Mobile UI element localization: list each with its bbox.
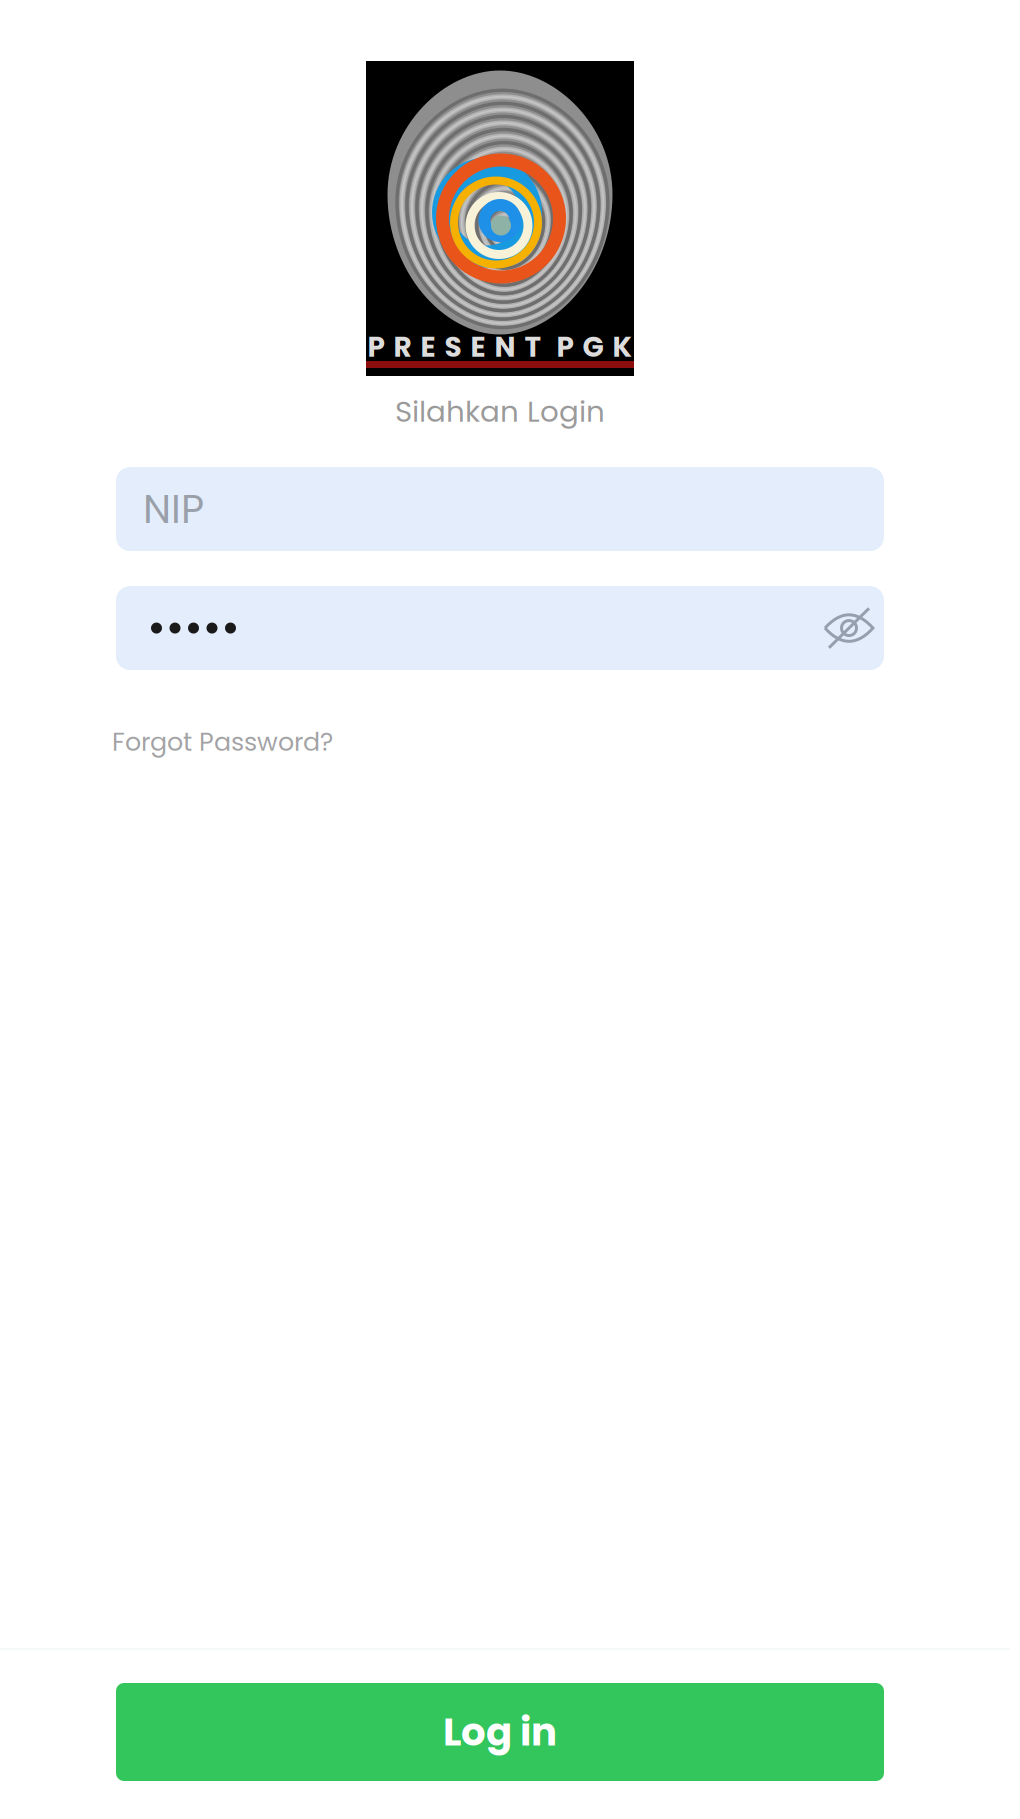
button[interactable]: Show password — [824, 611, 874, 645]
staticText: P R E S E N T P G K — [367, 327, 632, 367]
button[interactable]: Log in — [116, 1683, 884, 1781]
staticText: Forgot Password? — [112, 724, 333, 760]
button[interactable]: Forgot Password? — [112, 724, 333, 760]
staticText: NIP — [143, 481, 204, 537]
staticText: Log in — [443, 1705, 557, 1759]
staticText: Silahkan Login — [395, 391, 605, 432]
